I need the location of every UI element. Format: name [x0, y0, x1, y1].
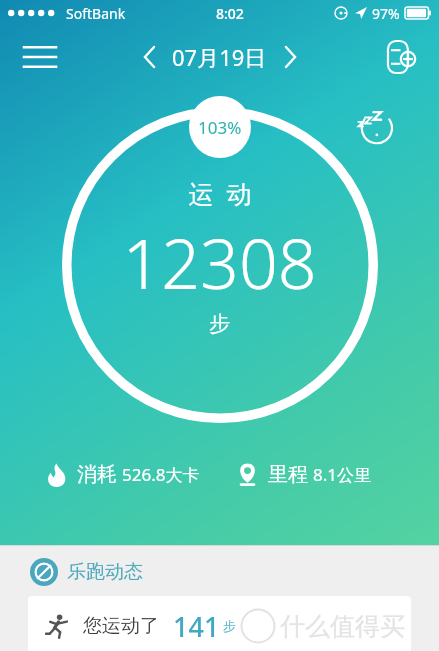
button[interactable]: 里程 [236, 462, 372, 487]
button[interactable]: Add device [379, 34, 425, 80]
staticText: 运 动 [188, 176, 252, 210]
staticText: 消耗 [77, 462, 117, 487]
staticText: 您运动了 [83, 614, 159, 638]
staticText: 12308 [122, 216, 317, 309]
staticText: 141 [173, 608, 220, 645]
button[interactable]: Next day [273, 40, 307, 74]
staticText: 526.8大卡 [122, 463, 200, 486]
staticText: 什么值得买 [280, 611, 405, 642]
staticText: 8:02 [216, 4, 244, 23]
staticText: 乐跑动态 [67, 560, 143, 584]
button[interactable]: Menu [16, 33, 64, 81]
staticText: 07月19日 [172, 42, 267, 72]
button[interactable]: 消耗 [44, 462, 200, 487]
button[interactable]: Previous day [132, 40, 166, 74]
staticText: 97% [372, 4, 400, 23]
button[interactable]: 103% [189, 96, 251, 158]
staticText: 步 [223, 618, 236, 634]
button[interactable]: 您运动了 [28, 596, 411, 651]
button[interactable]: 乐跑动态 [0, 546, 439, 596]
staticText: 103% [198, 116, 242, 139]
staticText: SoftBank [66, 4, 126, 23]
staticText: 里程 [268, 462, 308, 487]
staticText: 步 [209, 311, 230, 337]
button[interactable]: Sleep [355, 105, 397, 147]
staticText: 8.1公里 [313, 463, 372, 486]
